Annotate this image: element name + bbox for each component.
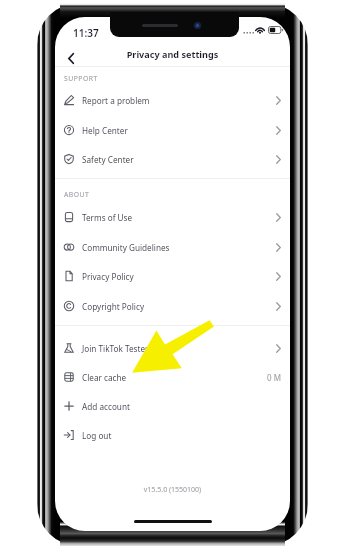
button[interactable]: Report a problem — [55, 85, 290, 115]
staticText: Report a problem — [82, 95, 150, 106]
button[interactable]: Join TikTok Testers — [55, 333, 290, 363]
staticText: Privacy Policy — [82, 271, 134, 282]
staticText: Help Center — [82, 125, 128, 136]
button[interactable]: Copyright Policy — [55, 291, 290, 321]
button[interactable]: Log out — [55, 420, 290, 450]
staticText: Join TikTok Testers — [82, 343, 153, 354]
staticText: Clear cache — [82, 372, 127, 383]
button[interactable]: Terms of Use — [55, 202, 290, 232]
button[interactable]: Help Center — [55, 115, 290, 145]
button[interactable]: Back — [58, 47, 84, 69]
staticText: 0 M — [267, 372, 281, 383]
staticText: 11:37 — [73, 26, 99, 40]
button[interactable]: Privacy Policy — [55, 261, 290, 291]
button[interactable]: Community Guidelines — [55, 232, 290, 262]
staticText: Community Guidelines — [82, 242, 170, 253]
staticText: Privacy and settings — [55, 48, 290, 60]
button[interactable]: Add account — [55, 391, 290, 421]
staticText: SUPPORT — [64, 74, 98, 83]
staticText: Copyright Policy — [82, 301, 145, 312]
staticText: Log out — [82, 430, 112, 441]
button[interactable]: Safety Center — [55, 144, 290, 174]
staticText: v15.5.0 (1550100) — [55, 485, 290, 495]
staticText: Safety Center — [82, 154, 134, 165]
button[interactable]: Clear cache — [55, 362, 290, 392]
staticText: ABOUT — [64, 190, 90, 199]
staticText: Add account — [82, 401, 130, 412]
staticText: Terms of Use — [82, 212, 133, 223]
